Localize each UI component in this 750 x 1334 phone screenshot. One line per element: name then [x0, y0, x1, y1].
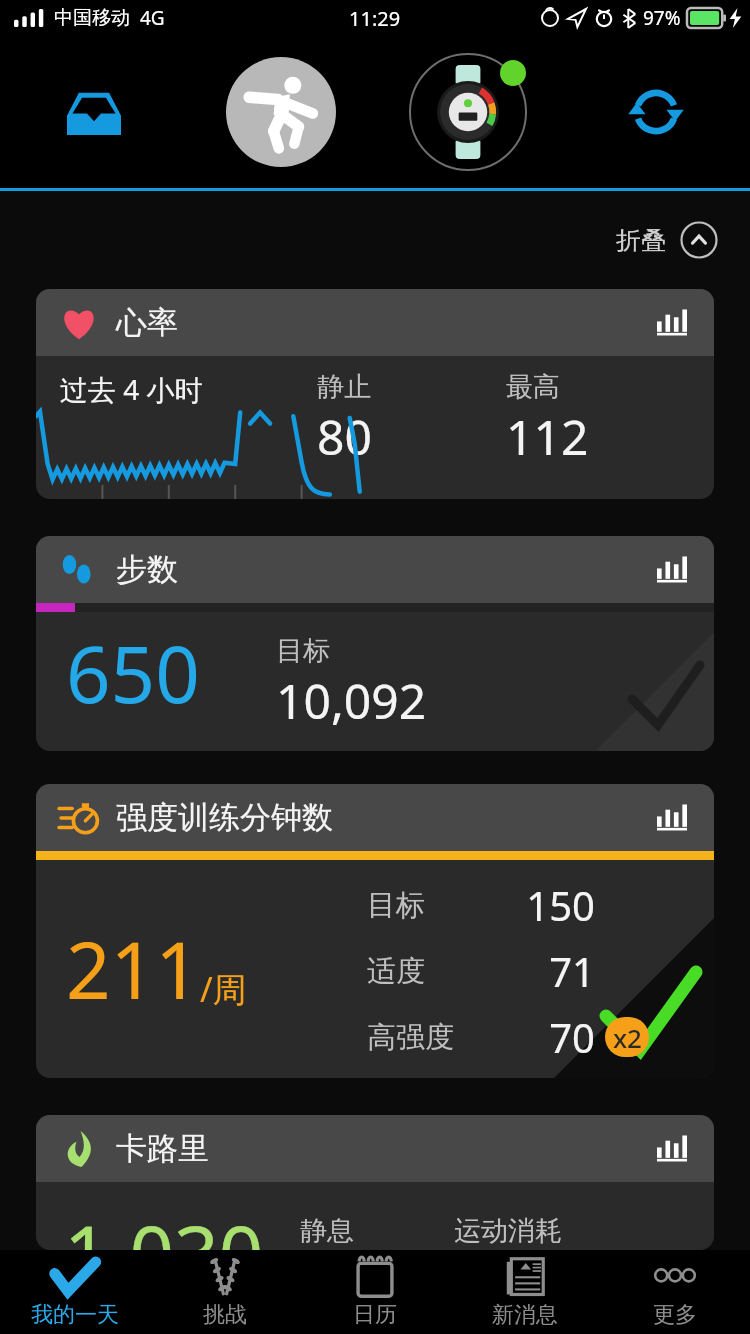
staticText: 中国移动	[54, 6, 130, 30]
button[interactable]: 新消息	[450, 1250, 600, 1334]
staticText: 70	[517, 1010, 595, 1064]
staticText: 211	[66, 916, 200, 1022]
staticText: 10,092	[276, 668, 427, 733]
staticText: 静止	[317, 370, 371, 404]
staticText: 适度	[367, 953, 517, 990]
button[interactable]: 挑战	[150, 1250, 300, 1334]
staticText: 71	[517, 944, 595, 998]
button[interactable]: Device	[374, 36, 562, 188]
staticText: 心率	[116, 303, 178, 342]
button[interactable]: Inbox	[0, 36, 187, 188]
button[interactable]: Sync	[562, 36, 750, 188]
button[interactable]: View chart	[652, 798, 692, 838]
staticText: 日历	[353, 1301, 397, 1329]
staticText: 最高	[506, 370, 560, 404]
button[interactable]: 折叠	[616, 221, 718, 259]
staticText: 高强度	[367, 1019, 517, 1056]
button[interactable]: 日历	[300, 1250, 450, 1334]
staticText: 目标	[367, 887, 517, 924]
button[interactable]: Activity	[187, 36, 374, 188]
staticText: 目标	[276, 634, 330, 668]
button[interactable]: 更多	[600, 1250, 750, 1334]
staticText: 11:29	[349, 5, 401, 32]
button[interactable]: 心率	[36, 289, 714, 499]
staticText: 97%	[643, 5, 681, 31]
staticText: 我的一天	[31, 1301, 119, 1329]
staticText: 4G	[140, 5, 165, 31]
staticText: 卡路里	[116, 1129, 209, 1168]
staticText: 1,030	[64, 1200, 264, 1250]
button[interactable]: 卡路里	[36, 1115, 714, 1250]
button[interactable]: 我的一天	[0, 1250, 150, 1334]
button[interactable]: View chart	[652, 303, 692, 343]
staticText: 150	[517, 878, 595, 932]
staticText: 650	[66, 620, 200, 726]
staticText: 更多	[653, 1301, 697, 1329]
staticText: 折叠	[616, 225, 666, 256]
staticText: /周	[200, 966, 247, 1012]
staticText: 80	[317, 404, 372, 469]
staticText: 运动消耗	[454, 1214, 562, 1248]
staticText: 强度训练分钟数	[116, 798, 333, 837]
button[interactable]: View chart	[652, 1129, 692, 1169]
staticText: 新消息	[492, 1301, 558, 1329]
staticText: 挑战	[203, 1301, 247, 1329]
staticText: 步数	[116, 550, 178, 589]
button[interactable]: 步数	[36, 536, 714, 751]
staticText: 112	[506, 404, 589, 469]
button[interactable]: 强度训练分钟数	[36, 784, 714, 1078]
staticText: x2	[613, 1020, 642, 1055]
staticText: 静息	[300, 1214, 354, 1248]
staticText: 过去 4 小时	[60, 370, 203, 408]
button[interactable]: View chart	[652, 550, 692, 590]
